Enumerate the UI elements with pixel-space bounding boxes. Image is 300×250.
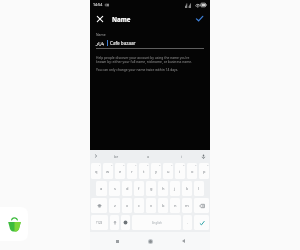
button[interactable]: v <box>146 198 156 213</box>
staticText: 3 <box>123 164 125 167</box>
staticText: 7 <box>171 164 173 167</box>
staticText: i <box>179 169 181 174</box>
button[interactable]: Cafe Bazaar <box>0 207 28 241</box>
button[interactable]: u <box>163 163 173 179</box>
staticText: v <box>150 203 153 208</box>
button[interactable]: Enter <box>194 215 209 230</box>
button[interactable]: y <box>151 163 161 179</box>
staticText: ?123 <box>96 221 103 225</box>
button[interactable]: Back <box>177 234 191 248</box>
button[interactable]: q <box>91 163 101 179</box>
button[interactable]: b <box>158 198 168 213</box>
staticText: q <box>95 169 98 174</box>
staticText: s <box>114 186 116 191</box>
button[interactable]: Close <box>90 9 109 28</box>
staticText: Help people discover your account by usi… <box>96 55 190 59</box>
staticText: y <box>155 169 158 174</box>
button[interactable]: n <box>170 198 180 213</box>
button[interactable]: f <box>134 181 144 196</box>
button[interactable]: Backspace <box>194 198 209 213</box>
button[interactable]: d <box>122 181 132 196</box>
staticText: h <box>162 186 165 191</box>
button[interactable]: p <box>199 163 209 179</box>
staticText: You can only change your name twice with… <box>96 67 179 71</box>
button[interactable]: t <box>139 163 149 179</box>
staticText: x <box>126 203 129 208</box>
staticText: p <box>203 169 206 174</box>
button[interactable]: Home <box>143 234 157 248</box>
button[interactable]: r <box>127 163 137 179</box>
button[interactable]: z <box>109 198 120 213</box>
staticText: k <box>186 186 189 191</box>
button[interactable]: l <box>194 181 204 196</box>
staticText: 8 <box>183 164 185 167</box>
button[interactable]: a <box>96 181 107 196</box>
staticText: w <box>106 169 110 174</box>
button[interactable]: i <box>175 163 185 179</box>
staticText: 6 <box>159 164 161 167</box>
staticText: Name <box>96 32 106 37</box>
button[interactable]: o <box>187 163 197 179</box>
button[interactable]: h <box>158 181 168 196</box>
button[interactable]: English <box>132 215 181 230</box>
button[interactable]: be <box>100 150 132 162</box>
staticText: 1 <box>99 164 101 167</box>
button[interactable]: Recents <box>110 234 124 248</box>
button[interactable]: w <box>103 163 113 179</box>
button[interactable]: s <box>109 181 120 196</box>
staticText: z <box>114 203 116 208</box>
button[interactable]: Shift <box>91 198 107 213</box>
button[interactable]: More suggestions <box>92 152 100 160</box>
staticText: 9 <box>195 164 197 167</box>
button[interactable]: m <box>182 198 192 213</box>
staticText: t <box>143 169 145 174</box>
staticText: Name <box>112 15 131 23</box>
button[interactable]: Confirm <box>189 9 209 28</box>
staticText: Cafe bazaar <box>110 40 136 46</box>
button[interactable]: x <box>122 198 132 213</box>
staticText: بازار <box>96 41 105 46</box>
staticText: o <box>191 169 194 174</box>
button[interactable]: g <box>146 181 156 196</box>
button[interactable]: Emoji <box>110 215 119 230</box>
staticText: . <box>187 220 188 225</box>
staticText: a <box>147 154 150 159</box>
staticText: e <box>119 169 122 174</box>
staticText: j <box>174 186 176 191</box>
staticText: f <box>138 186 140 191</box>
button[interactable]: c <box>134 198 144 213</box>
staticText: g <box>150 186 153 191</box>
staticText: English <box>152 221 162 225</box>
staticText: known by: either your full name, nicknam… <box>96 59 192 63</box>
staticText: 2 <box>111 164 113 167</box>
button[interactable]: j <box>170 181 180 196</box>
staticText: 14:54 <box>93 2 103 7</box>
staticText: 5 <box>147 164 149 167</box>
staticText: b <box>162 203 165 208</box>
staticText: a <box>100 186 103 191</box>
staticText: u <box>167 169 170 174</box>
staticText: 0 <box>207 164 209 167</box>
button[interactable]: Language <box>121 215 130 230</box>
button[interactable]: k <box>182 181 192 196</box>
staticText: be <box>114 154 119 159</box>
button[interactable]: ?123 <box>91 215 108 230</box>
staticText: r <box>131 169 133 174</box>
staticText: l <box>198 186 200 191</box>
staticText: c <box>138 203 140 208</box>
staticText: 4 <box>135 164 137 167</box>
staticText: i <box>181 154 182 159</box>
button[interactable]: a <box>132 150 165 162</box>
button[interactable]: e <box>115 163 125 179</box>
staticText: n <box>174 203 177 208</box>
button[interactable]: Voice input <box>198 151 208 161</box>
staticText: m <box>185 203 189 208</box>
staticText: d <box>126 186 129 191</box>
